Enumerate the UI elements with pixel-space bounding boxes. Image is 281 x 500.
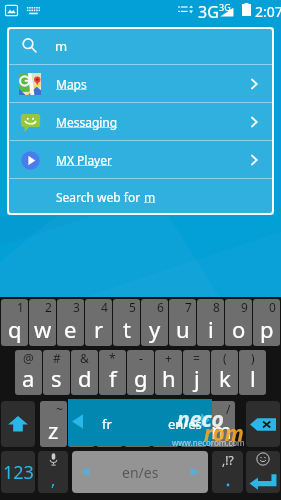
staticText: #	[53, 350, 61, 366]
staticText: 3G	[219, 1, 231, 13]
button[interactable]: Search web for	[7, 179, 274, 215]
staticText: MX Player	[56, 152, 112, 168]
button[interactable]: Backspace	[246, 401, 280, 447]
button[interactable]: Voice input	[38, 451, 68, 493]
staticText: rom	[204, 419, 244, 448]
button[interactable]: 123	[1, 451, 35, 493]
button[interactable]: z	[40, 401, 67, 447]
staticText: c	[104, 415, 115, 445]
staticText: 123	[3, 460, 34, 485]
staticText: -	[139, 350, 143, 366]
staticText: en/es	[122, 463, 159, 482]
button[interactable]: i	[197, 299, 224, 346]
staticText: en/es	[168, 415, 202, 433]
staticText: y	[149, 314, 161, 344]
button[interactable]: w	[29, 299, 56, 346]
staticText: neco	[177, 405, 224, 434]
staticText: )	[251, 350, 255, 366]
button[interactable]: Maps	[7, 65, 274, 102]
staticText: m	[55, 37, 68, 55]
button[interactable]: b	[152, 401, 179, 447]
button[interactable]: d	[71, 350, 98, 395]
button[interactable]: k	[211, 350, 238, 395]
staticText: (	[223, 350, 227, 366]
staticText: ,!?	[222, 452, 234, 468]
staticText: 3G	[198, 1, 219, 20]
staticText: m	[211, 415, 232, 445]
button[interactable]: en/es	[72, 451, 208, 493]
staticText: d	[78, 363, 92, 393]
staticText: z	[48, 415, 59, 445]
button[interactable]: Shift	[1, 401, 35, 447]
button[interactable]: m	[7, 27, 274, 64]
staticText: b	[159, 415, 173, 445]
staticText: 1	[17, 299, 24, 315]
staticText: p	[260, 314, 274, 344]
button[interactable]: Punctuation	[212, 451, 243, 493]
button[interactable]: x	[68, 401, 95, 447]
staticText: @	[23, 350, 34, 366]
staticText: a	[22, 363, 35, 393]
staticText: Messaging	[56, 114, 118, 130]
staticText: =	[193, 350, 200, 366]
staticText: u	[176, 314, 190, 344]
staticText: j	[194, 363, 200, 393]
staticText: 0	[269, 299, 276, 315]
staticText: Maps	[56, 76, 87, 92]
staticText: &	[80, 350, 89, 366]
staticText: 2	[45, 299, 52, 315]
staticText: ~	[56, 401, 63, 417]
staticText: x	[76, 415, 88, 445]
button[interactable]: o	[225, 299, 252, 346]
button[interactable]: g	[127, 350, 154, 395]
staticText: 5	[129, 299, 136, 315]
button[interactable]: fr	[68, 399, 212, 446]
staticText: e	[64, 314, 77, 344]
button[interactable]: t	[113, 299, 140, 346]
button[interactable]: r	[85, 299, 112, 346]
button[interactable]: l	[239, 350, 266, 395]
staticText: r	[94, 314, 104, 344]
staticText: w	[34, 314, 52, 344]
staticText: ;	[199, 401, 203, 417]
button[interactable]: p	[253, 299, 280, 346]
button[interactable]: m	[208, 401, 235, 447]
button[interactable]: Enter	[246, 451, 280, 493]
button[interactable]: Messaging	[7, 103, 274, 140]
staticText: n	[187, 415, 201, 445]
staticText: 9	[241, 299, 248, 315]
staticText: s	[51, 363, 62, 393]
staticText: i	[208, 314, 214, 344]
button[interactable]: n	[180, 401, 207, 447]
button[interactable]: MX Player	[7, 141, 274, 178]
button[interactable]: j	[183, 350, 210, 395]
staticText: Search web for	[56, 189, 144, 205]
button[interactable]: e	[57, 299, 84, 346]
button[interactable]: h	[155, 350, 182, 395]
staticText: o	[232, 314, 246, 344]
staticText: g	[134, 363, 148, 393]
staticText: ,	[51, 469, 56, 491]
staticText: q	[8, 314, 22, 344]
button[interactable]: c	[96, 401, 123, 447]
button[interactable]: q	[1, 299, 28, 346]
staticText: /	[226, 401, 231, 417]
staticText: 7	[185, 299, 192, 315]
button[interactable]: u	[169, 299, 196, 346]
button[interactable]: s	[43, 350, 70, 395]
staticText: m	[144, 189, 156, 205]
button[interactable]: a	[15, 350, 42, 395]
staticText: t	[123, 314, 131, 344]
staticText: k	[219, 363, 231, 393]
button[interactable]: f	[99, 350, 126, 395]
staticText: *	[109, 350, 116, 366]
staticText: f	[109, 363, 117, 393]
staticText: www.necorom.com	[172, 437, 245, 448]
button[interactable]: v	[124, 401, 151, 447]
staticText: +	[165, 350, 172, 366]
button[interactable]: y	[141, 299, 168, 346]
